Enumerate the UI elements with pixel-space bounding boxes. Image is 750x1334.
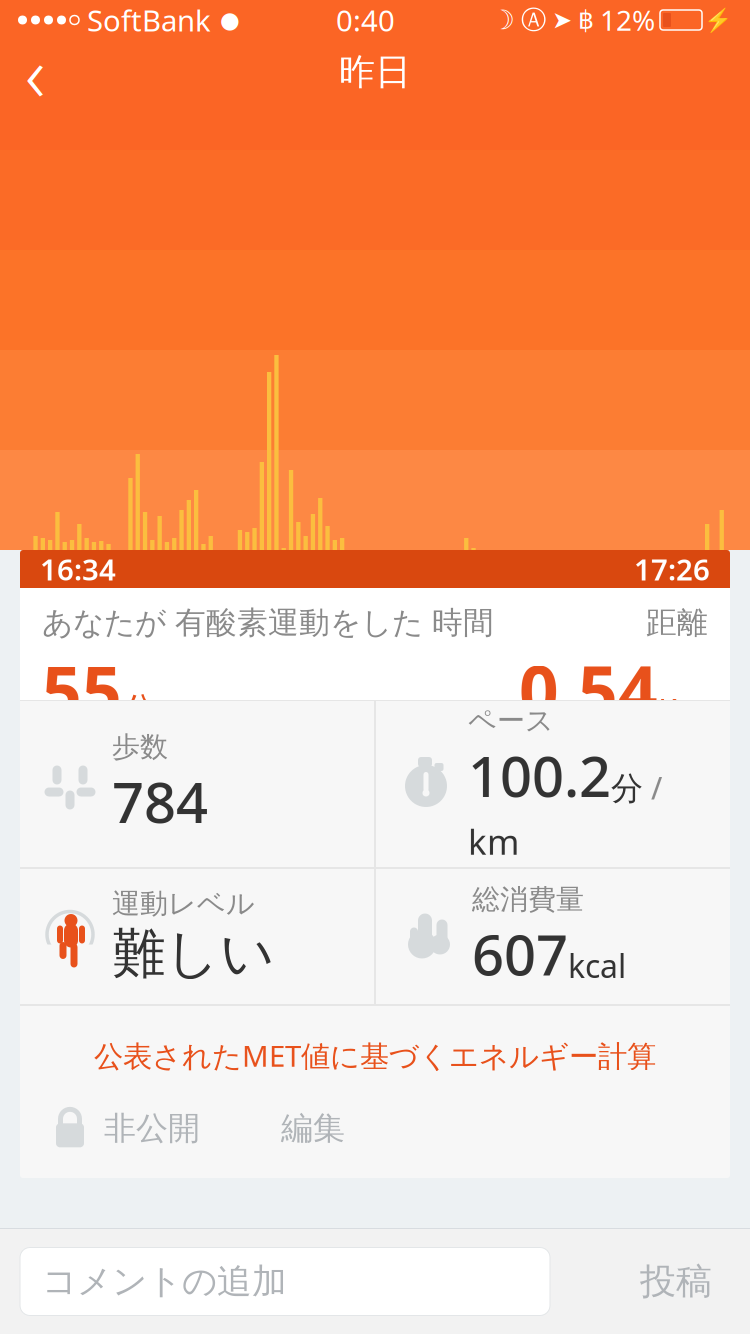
staticText: ペース (468, 704, 554, 738)
staticText: 100.2 (468, 738, 611, 812)
staticText: 607 (472, 916, 568, 991)
staticText: 歩数 (112, 730, 168, 764)
staticText: ● (220, 7, 240, 33)
staticText: 非公開 (104, 1109, 200, 1148)
staticText: ‹ (25, 21, 45, 123)
button[interactable]: 戻る (0, 40, 70, 104)
staticText: Km (658, 688, 708, 731)
staticText: 運動レベル (112, 887, 255, 921)
staticText: 12% (600, 1, 655, 39)
staticText: 距離 (646, 604, 708, 642)
staticText: 17:26 (634, 549, 710, 588)
staticText: kcal (568, 944, 626, 987)
staticText: Ⓐ (521, 4, 546, 35)
staticText: コメントの追加 (42, 1260, 287, 1303)
staticText: 0:40 (336, 0, 395, 39)
staticText: km (468, 818, 519, 864)
staticText: 編集 (281, 1109, 345, 1148)
staticText: / (643, 766, 663, 808)
staticText: 公表されたMET値に基づくエネルギー計算 (94, 1036, 656, 1075)
staticText: 総消費量 (472, 882, 584, 916)
staticText: 0.54 (519, 644, 658, 736)
staticText: ☽ (491, 5, 515, 35)
staticText: SoftBank (87, 0, 211, 39)
staticText: あなたが 有酸素運動をした 時間 (42, 604, 494, 642)
staticText: ➤ (552, 6, 572, 34)
button[interactable]: 編集 (275, 1101, 351, 1156)
staticText: 55 (42, 644, 122, 736)
staticText: 分 (611, 769, 643, 808)
staticText: 難しい (112, 921, 275, 986)
button[interactable]: 非公開 (50, 1106, 200, 1150)
staticText: 784 (112, 764, 208, 838)
staticText: 16:34 (40, 549, 116, 588)
staticText: 分 (122, 689, 157, 732)
staticText: ⚡ (704, 7, 732, 33)
button[interactable]: 公表されたMET値に基づくエネルギー計算 (94, 1030, 656, 1081)
button[interactable]: 投稿 (626, 1245, 726, 1318)
staticText: 投稿 (640, 1259, 712, 1304)
staticText: ฿ (578, 6, 594, 34)
button[interactable]: コメントの追加 (20, 1247, 550, 1315)
staticText: 昨日 (339, 50, 411, 94)
